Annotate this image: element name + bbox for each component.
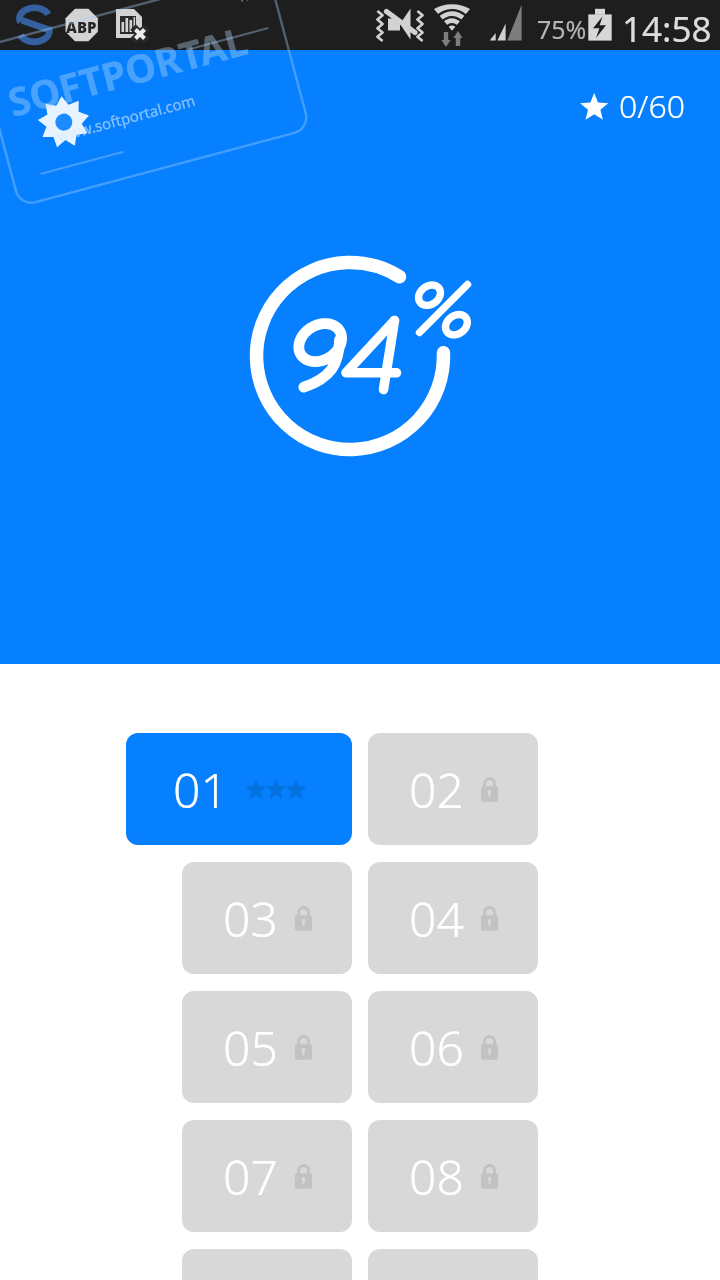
button[interactable]: 06 bbox=[368, 991, 538, 1103]
staticText: 05 bbox=[223, 1015, 278, 1080]
button[interactable]: 08 bbox=[368, 1120, 538, 1232]
staticText: 14:58 bbox=[622, 5, 712, 53]
staticText: 07 bbox=[223, 1144, 278, 1209]
staticText: 06 bbox=[409, 1015, 464, 1080]
staticText: TM bbox=[235, 0, 259, 7]
staticText: 08 bbox=[409, 1144, 464, 1209]
staticText: 03 bbox=[223, 886, 278, 951]
staticText: 01 bbox=[173, 757, 228, 822]
button[interactable]: Stars collected: 0 of 60 bbox=[580, 85, 685, 129]
staticText: 75% bbox=[537, 12, 587, 46]
staticText: 04 bbox=[409, 886, 464, 951]
button[interactable]: 03 bbox=[182, 862, 352, 974]
button[interactable]: 05 bbox=[182, 991, 352, 1103]
button[interactable]: 02 bbox=[368, 733, 538, 845]
button[interactable]: 04 bbox=[368, 862, 538, 974]
staticText: ABP bbox=[66, 17, 97, 37]
staticText: SOFTPORTAL bbox=[2, 0, 305, 128]
button[interactable]: 10 bbox=[368, 1249, 538, 1280]
staticText: 02 bbox=[409, 757, 464, 822]
button[interactable]: 09 bbox=[182, 1249, 352, 1280]
button[interactable]: 07 bbox=[182, 1120, 352, 1232]
button[interactable]: 01 bbox=[126, 733, 352, 845]
staticText: 0/60 bbox=[619, 84, 685, 128]
staticText: www.softportal.com bbox=[55, 54, 330, 146]
